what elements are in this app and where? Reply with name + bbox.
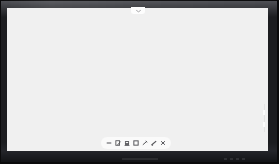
button[interactable]: Highlighter — [150, 137, 158, 149]
button[interactable]: Open menu — [131, 7, 145, 14]
button[interactable]: Menu — [105, 137, 113, 149]
button[interactable]: Close — [159, 137, 167, 149]
button[interactable]: Note — [114, 137, 122, 149]
button[interactable]: Pen — [141, 137, 149, 149]
button[interactable]: Shape — [132, 137, 140, 149]
button[interactable]: Stamp — [123, 137, 131, 149]
